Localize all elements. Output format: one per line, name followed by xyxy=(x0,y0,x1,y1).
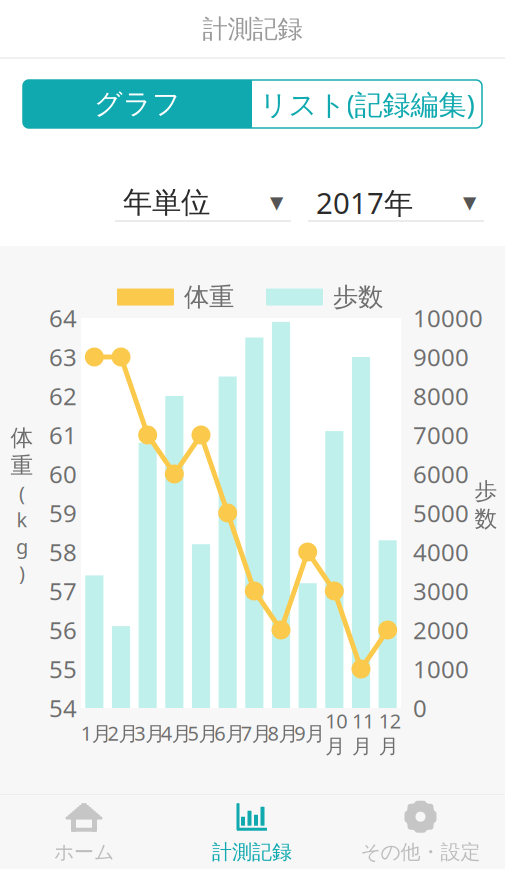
button[interactable]: 計測記録 xyxy=(168,795,336,869)
staticText: 6月 xyxy=(214,720,245,746)
button[interactable]: 2017年 xyxy=(308,183,484,223)
button[interactable]: リスト(記録編集) xyxy=(252,80,482,128)
staticText: ) xyxy=(19,559,25,586)
staticText: ▼ xyxy=(463,193,476,212)
staticText: リスト(記録編集) xyxy=(259,85,474,123)
staticText: ▼ xyxy=(270,193,283,212)
staticText: 6000 xyxy=(413,458,469,490)
staticText: 54 xyxy=(49,692,77,724)
staticText: 61 xyxy=(49,419,77,451)
staticText: 62 xyxy=(49,380,77,412)
staticText: 4000 xyxy=(413,536,469,568)
staticText: 体 xyxy=(10,424,33,452)
staticText: 2月 xyxy=(107,720,138,746)
staticText: g xyxy=(16,533,28,559)
staticText: 57 xyxy=(49,575,77,607)
staticText: 数 xyxy=(474,505,497,533)
staticText: ( xyxy=(19,480,25,506)
staticText: 56 xyxy=(49,614,77,646)
staticText: 9000 xyxy=(413,341,469,373)
staticText: 年単位 xyxy=(123,184,210,220)
staticText: 10月 xyxy=(325,707,347,758)
staticText: 体重 xyxy=(184,281,234,312)
button[interactable]: その他・設定 xyxy=(336,795,505,869)
staticText: 計測記録 xyxy=(212,840,292,864)
staticText: 1月 xyxy=(81,720,112,746)
staticText: 3000 xyxy=(413,575,469,607)
staticText: k xyxy=(16,506,27,533)
staticText: 8000 xyxy=(413,380,469,412)
staticText: 0 xyxy=(413,692,427,724)
staticText: 58 xyxy=(49,536,77,568)
staticText: 3月 xyxy=(134,720,165,746)
staticText: 5000 xyxy=(413,497,469,529)
staticText: 7月 xyxy=(241,720,272,746)
staticText: 59 xyxy=(49,497,77,529)
staticText: 60 xyxy=(49,458,77,490)
staticText: 64 xyxy=(49,302,77,334)
staticText: 2000 xyxy=(413,614,469,646)
staticText: 計測記録 xyxy=(202,13,302,44)
staticText: 11月 xyxy=(352,707,374,758)
staticText: 歩 xyxy=(474,477,497,505)
staticText: ホーム xyxy=(54,840,114,864)
staticText: 55 xyxy=(49,653,77,685)
staticText: その他・設定 xyxy=(360,840,480,864)
button[interactable]: 年単位 xyxy=(115,183,291,223)
staticText: 10000 xyxy=(413,302,483,334)
staticText: 7000 xyxy=(413,419,469,451)
staticText: 63 xyxy=(49,341,77,373)
staticText: 9月 xyxy=(294,720,325,746)
button[interactable]: グラフ xyxy=(23,80,252,128)
staticText: 12月 xyxy=(379,707,401,758)
staticText: 2017年 xyxy=(316,183,413,222)
staticText: 4月 xyxy=(161,720,192,746)
staticText: 重 xyxy=(10,452,33,480)
staticText: 8月 xyxy=(267,720,298,746)
staticText: 歩数 xyxy=(333,281,383,312)
staticText: 5月 xyxy=(187,720,218,746)
button[interactable]: ホーム xyxy=(0,795,168,869)
staticText: 1000 xyxy=(413,653,469,685)
staticText: グラフ xyxy=(94,87,181,121)
